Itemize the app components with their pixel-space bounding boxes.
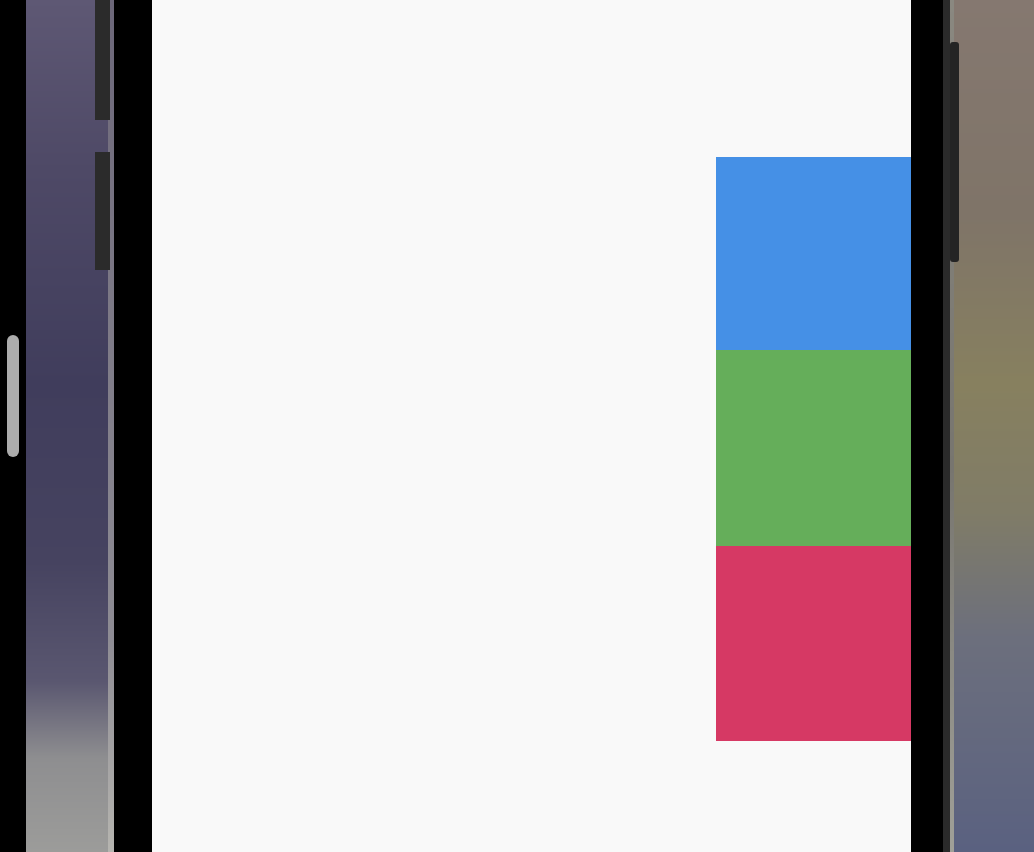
button[interactable]: Power	[948, 42, 960, 262]
